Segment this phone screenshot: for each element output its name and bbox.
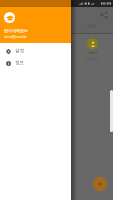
button[interactable]: 전체 (3, 21, 39, 33)
button[interactable]: 분류 (39, 21, 74, 33)
button[interactable]: 정보 (0, 57, 71, 69)
staticText: 사용자 (18, 51, 29, 56)
staticText: 전체 (17, 24, 26, 30)
staticText: 설정 (15, 48, 24, 54)
button[interactable]: 사용자 (41, 38, 75, 61)
staticText: 정보 (15, 60, 24, 66)
staticText: 한국대학정보 (4, 28, 28, 33)
button[interactable]: Share (99, 10, 108, 19)
button[interactable]: 설정 (0, 45, 71, 57)
staticText: abcd@univ.kr (4, 34, 27, 39)
button[interactable]: 사용자 (6, 38, 41, 61)
button[interactable]: Add (93, 177, 107, 191)
staticText: 목록 (87, 24, 96, 30)
button[interactable]: 사용자 (75, 38, 109, 61)
button[interactable]: 목록 (74, 21, 109, 33)
staticText: 사용자 (87, 51, 98, 56)
